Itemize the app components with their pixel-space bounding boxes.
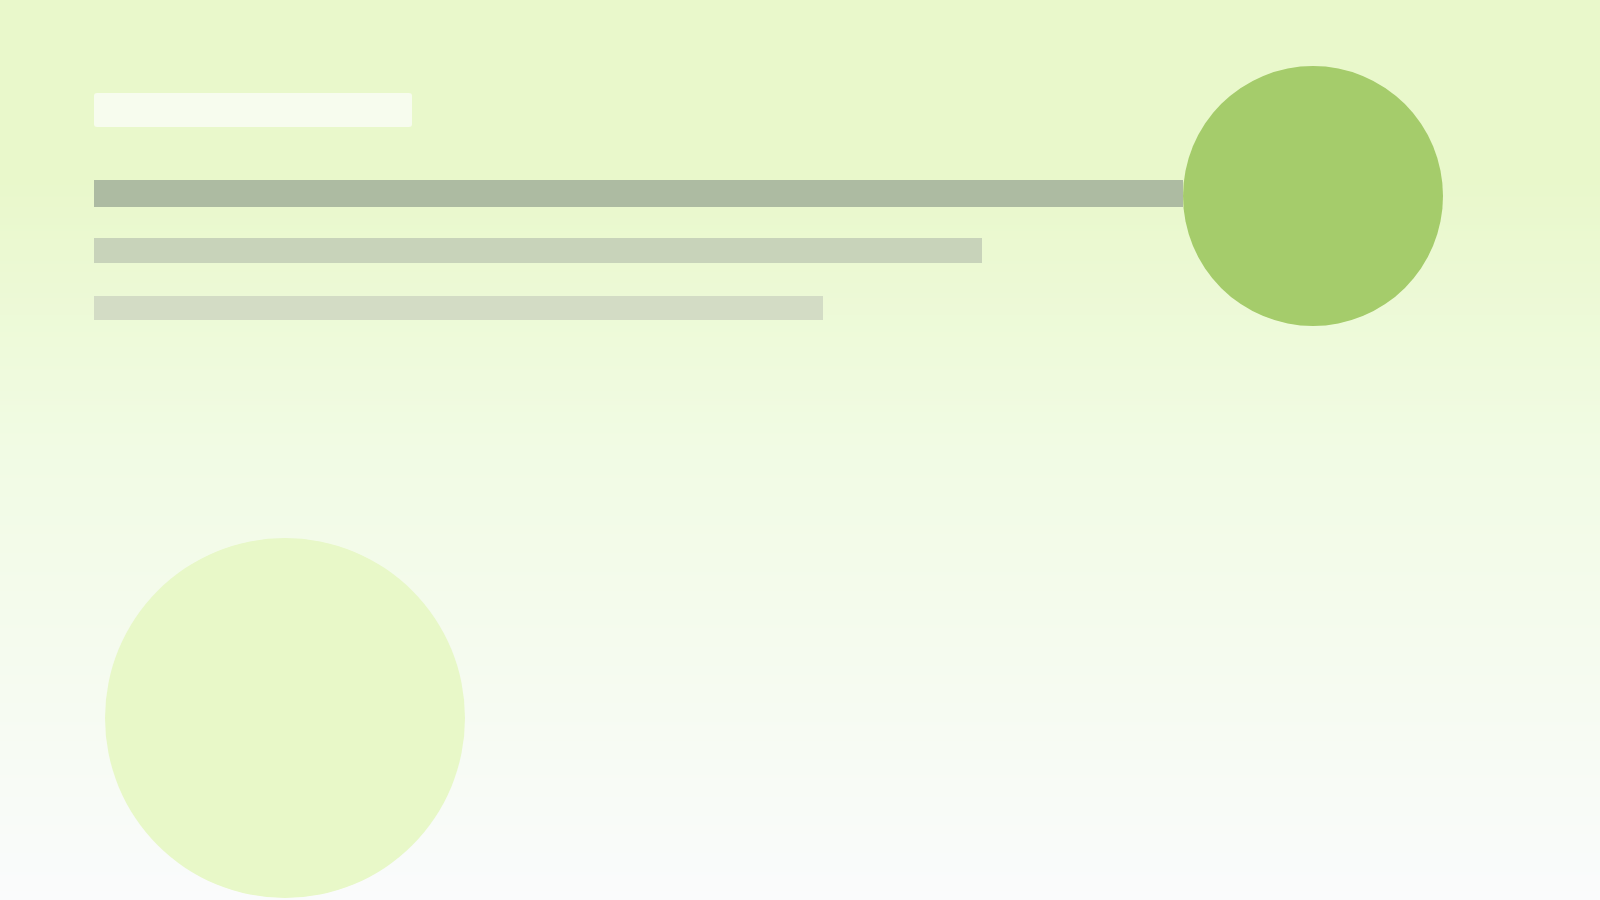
button[interactable]: Profile avatar: [1183, 66, 1443, 326]
